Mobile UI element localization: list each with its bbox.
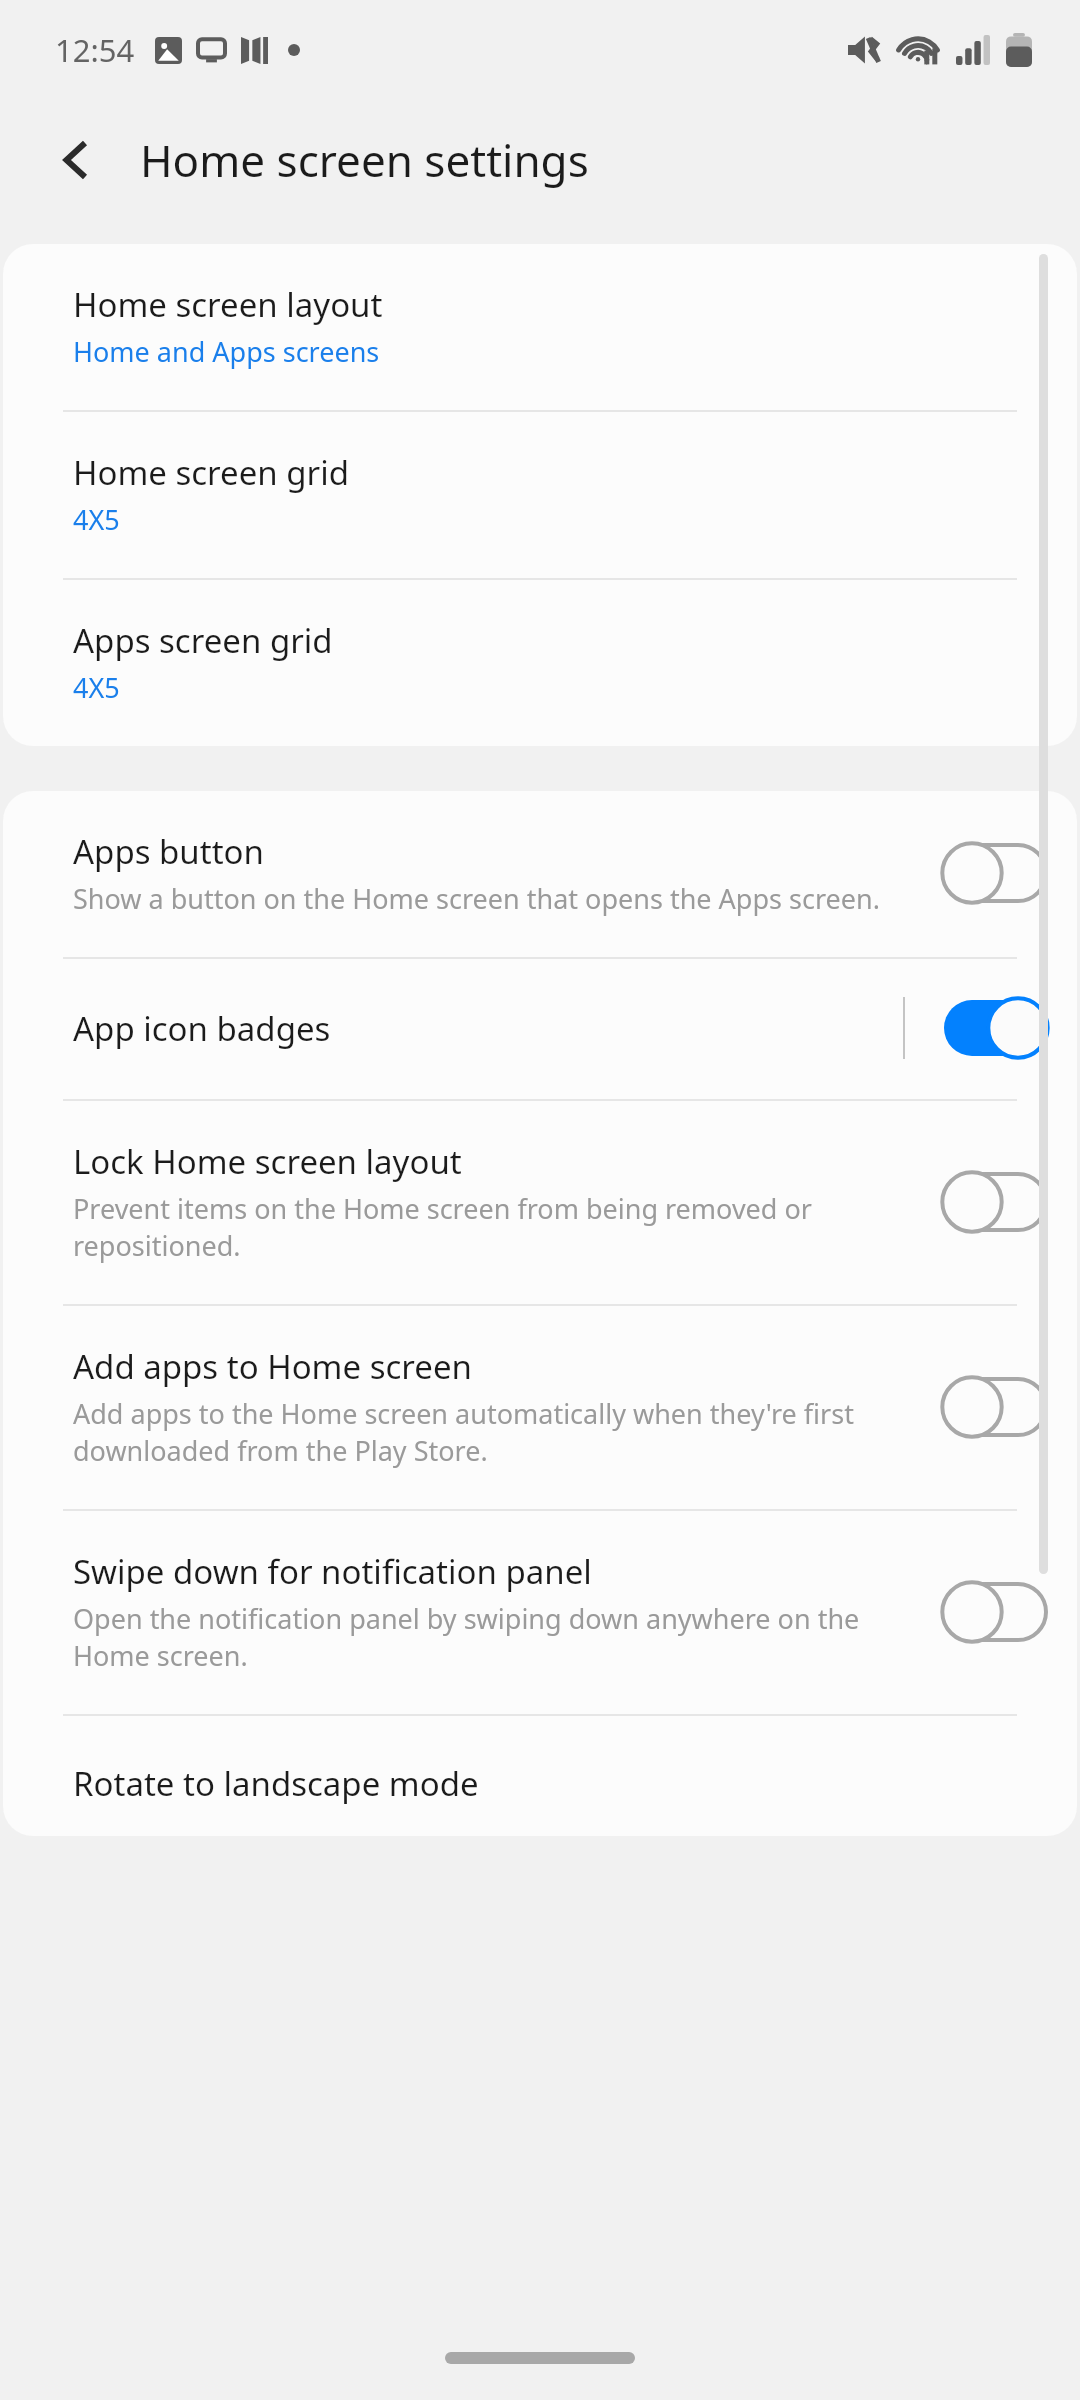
- button[interactable]: Home screen layout: [3, 244, 1077, 410]
- button[interactable]: Toggle off: [941, 1374, 1049, 1440]
- staticText: Apps screen grid: [73, 618, 333, 663]
- staticText: Prevent items on the Home screen from be…: [73, 1190, 917, 1264]
- staticText: 12:54: [55, 29, 135, 71]
- staticText: Rotate to landscape mode: [73, 1761, 479, 1806]
- button[interactable]: Apps button: [3, 791, 1077, 957]
- staticText: Show a button on the Home screen that op…: [73, 880, 880, 917]
- staticText: Home screen grid: [73, 450, 350, 495]
- button[interactable]: App icon badges: [3, 959, 1077, 1099]
- button[interactable]: Swipe down for notification panel: [3, 1511, 1077, 1714]
- button[interactable]: Toggle off: [941, 1169, 1049, 1235]
- staticText: Home screen settings: [140, 130, 589, 190]
- button[interactable]: Toggle off: [941, 1579, 1049, 1645]
- staticText: Home and Apps screens: [73, 333, 380, 370]
- button[interactable]: Add apps to Home screen: [3, 1306, 1077, 1509]
- button[interactable]: Toggle off: [941, 840, 1049, 906]
- button[interactable]: Apps screen grid: [3, 580, 1077, 746]
- staticText: 4X5: [73, 501, 120, 538]
- button[interactable]: Toggle on: [941, 995, 1049, 1061]
- button[interactable]: Rotate to landscape mode: [3, 1716, 1077, 1836]
- staticText: Add apps to Home screen: [73, 1344, 472, 1389]
- staticText: Open the notification panel by swiping d…: [73, 1600, 917, 1674]
- button[interactable]: Lock Home screen layout: [3, 1101, 1077, 1304]
- staticText: Home screen layout: [73, 282, 383, 327]
- staticText: Apps button: [73, 829, 264, 874]
- staticText: Swipe down for notification panel: [73, 1549, 592, 1594]
- staticText: 4X5: [73, 669, 120, 706]
- staticText: Add apps to the Home screen automaticall…: [73, 1395, 917, 1469]
- button[interactable]: Home screen grid: [3, 412, 1077, 578]
- staticText: Lock Home screen layout: [73, 1139, 462, 1184]
- button[interactable]: Back: [40, 124, 112, 196]
- staticText: App icon badges: [73, 1006, 331, 1051]
